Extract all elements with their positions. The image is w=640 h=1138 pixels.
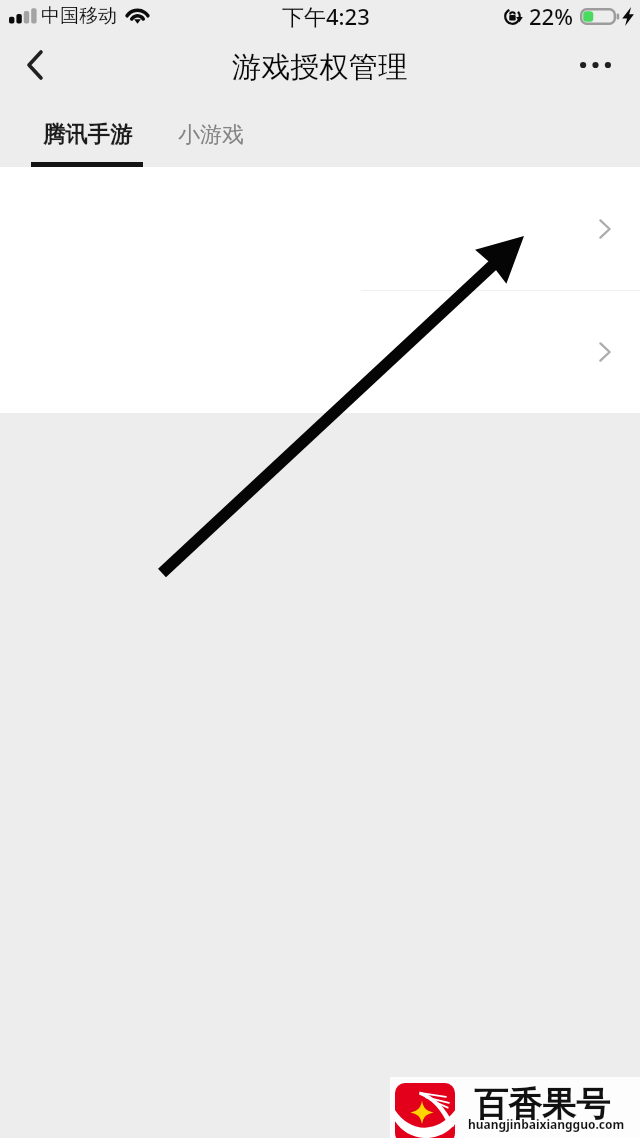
staticText: 22% xyxy=(529,1,573,31)
staticText: huangjinbaixiangguo.com xyxy=(468,1116,625,1132)
button[interactable]: 腾讯手游 xyxy=(0,97,174,167)
button[interactable]: Open xyxy=(0,167,640,290)
staticText: 百香果号 xyxy=(474,1083,610,1126)
button[interactable]: Open xyxy=(0,291,640,413)
staticText: 游戏授权管理 xyxy=(232,49,408,86)
button[interactable]: 小游戏 xyxy=(174,97,314,167)
other: Open xyxy=(599,219,611,239)
button[interactable]: Back xyxy=(0,32,66,97)
button[interactable]: More options xyxy=(574,32,640,97)
staticText: 中国移动 xyxy=(41,4,117,28)
staticText: 腾讯手游 xyxy=(43,121,133,149)
staticText: 小游戏 xyxy=(178,121,244,149)
other: Open xyxy=(599,342,611,362)
staticText: 下午4:23 xyxy=(282,1,370,31)
